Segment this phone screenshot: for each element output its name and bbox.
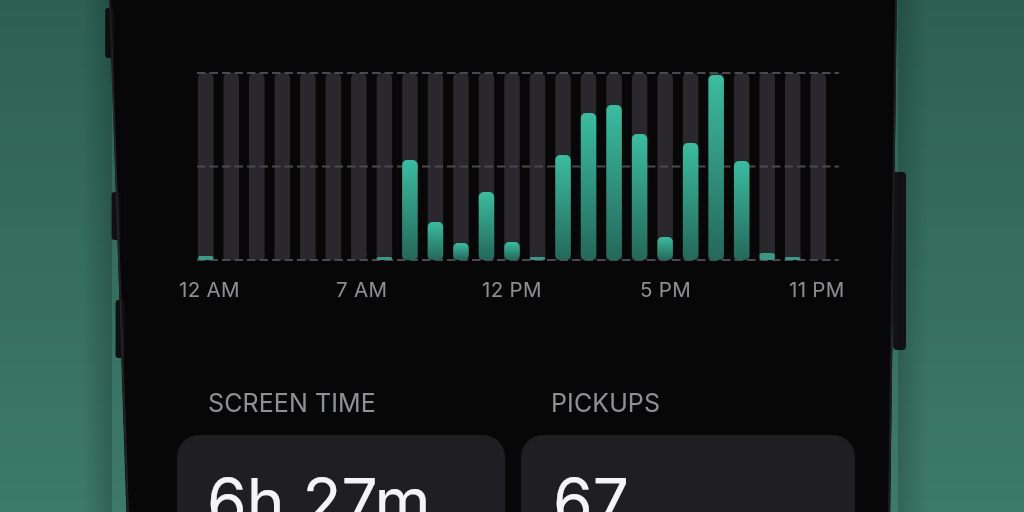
staticText: 5 PM xyxy=(640,277,692,302)
button[interactable]: 6h 27m xyxy=(177,435,505,512)
staticText: 7 AM xyxy=(336,277,388,302)
button[interactable]: 67 xyxy=(521,435,855,512)
staticText: 67 xyxy=(553,463,629,512)
staticText: 6h 27m xyxy=(207,463,431,512)
staticText: 12 AM xyxy=(179,277,240,302)
staticText: SCREEN TIME xyxy=(208,388,376,418)
staticText: 11 PM xyxy=(789,277,845,302)
staticText: 12 PM xyxy=(482,277,542,302)
staticText: PICKUPS xyxy=(551,388,661,418)
